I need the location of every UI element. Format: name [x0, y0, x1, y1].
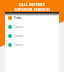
staticText: SUPERIOR SERVICES	[14, 8, 51, 12]
button[interactable]: Contact	[5, 22, 59, 31]
button[interactable]: Contact	[5, 40, 59, 49]
staticText: CALL HISTORY	[19, 3, 45, 7]
staticText: Contact	[14, 34, 24, 38]
staticText: Today	[14, 16, 22, 20]
staticText: Contact	[14, 43, 24, 47]
button[interactable]: Contact	[5, 31, 59, 40]
button[interactable]: Today	[5, 13, 59, 22]
staticText: Contact	[14, 25, 24, 29]
